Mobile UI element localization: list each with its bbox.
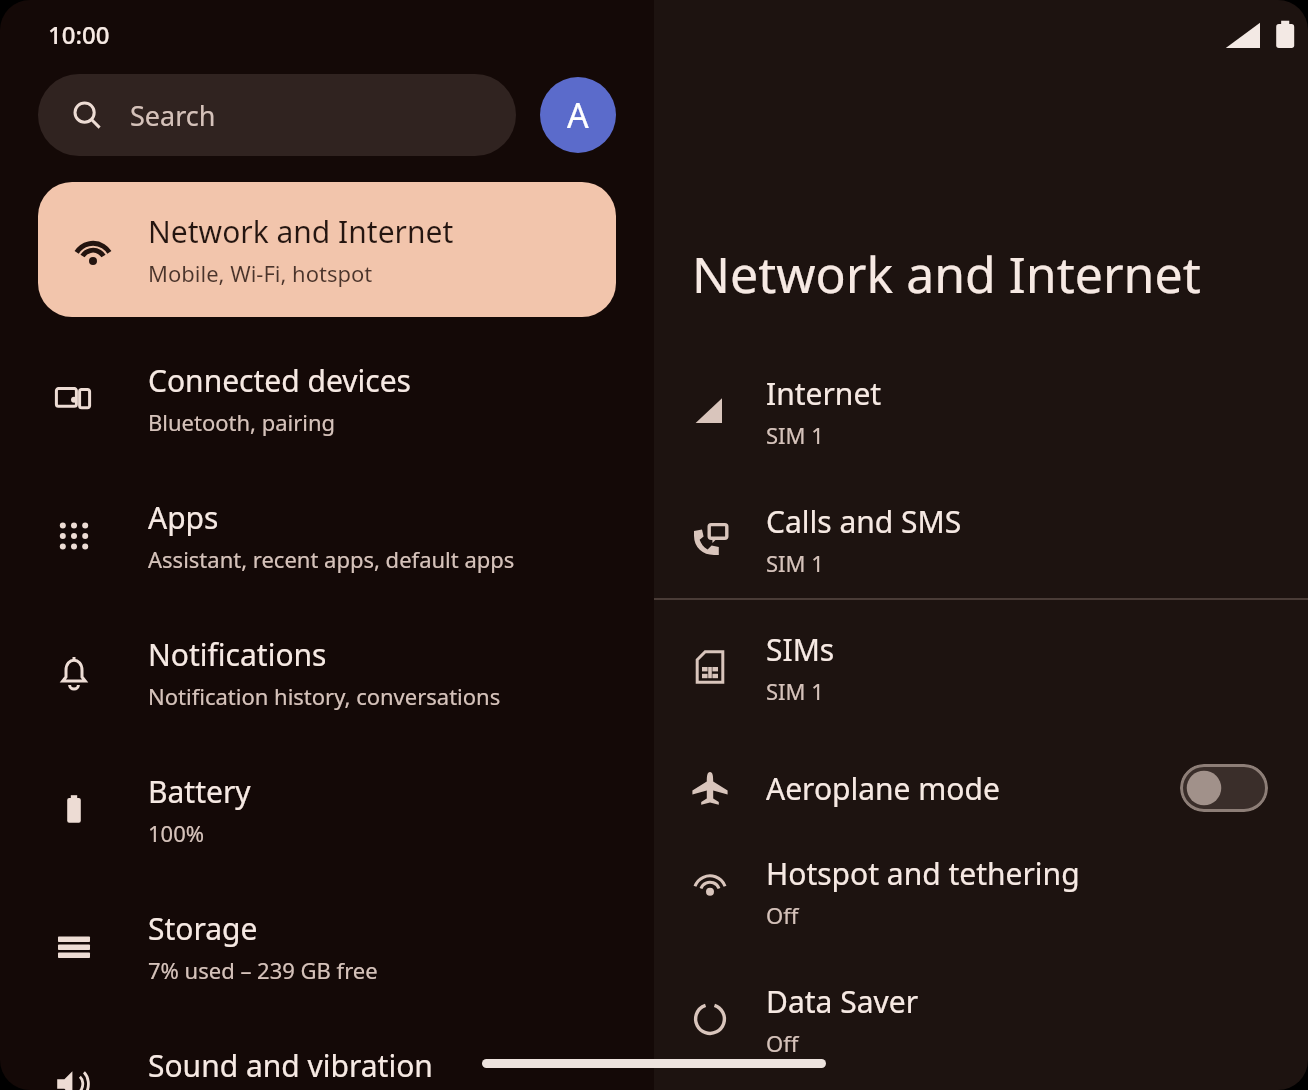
button[interactable]: Calls and SMS bbox=[654, 484, 1308, 594]
staticText: Sound and vibration bbox=[148, 1045, 433, 1086]
button[interactable]: Sound and vibration bbox=[0, 1015, 654, 1090]
button[interactable]: Apps bbox=[0, 467, 654, 604]
button[interactable]: Aeroplane mode toggle bbox=[1180, 764, 1268, 812]
button[interactable]: Aeroplane mode bbox=[654, 740, 1308, 836]
staticText: Off bbox=[766, 1028, 799, 1058]
staticText: Notification history, conversations bbox=[148, 681, 501, 711]
staticText: SIMs bbox=[766, 629, 835, 670]
staticText: Search bbox=[130, 97, 216, 134]
button[interactable]: Hotspot and tethering bbox=[654, 836, 1308, 946]
button[interactable]: Connected devices bbox=[0, 330, 654, 467]
staticText: Network and Internet bbox=[692, 240, 1201, 308]
staticText: Aeroplane mode bbox=[766, 768, 1000, 809]
staticText: Mobile, Wi-Fi, hotspot bbox=[148, 258, 373, 288]
button[interactable]: Storage bbox=[0, 878, 654, 1015]
staticText: SIM 1 bbox=[766, 676, 824, 706]
button[interactable]: SIMs bbox=[654, 612, 1308, 722]
staticText: Data Saver bbox=[766, 981, 919, 1022]
staticText: Internet bbox=[766, 373, 882, 414]
staticText: 100% bbox=[148, 818, 205, 848]
button[interactable]: Search bbox=[38, 74, 516, 156]
staticText: Off bbox=[766, 900, 799, 930]
staticText: Network and Internet bbox=[148, 211, 454, 252]
staticText: SIM 1 bbox=[766, 420, 824, 450]
staticText: Notifications bbox=[148, 634, 327, 675]
staticText: Connected devices bbox=[148, 360, 411, 401]
button[interactable]: Account bbox=[540, 77, 616, 153]
staticText: SIM 1 bbox=[766, 548, 824, 578]
button[interactable]: Notifications bbox=[0, 604, 654, 741]
staticText: Battery bbox=[148, 771, 251, 812]
staticText: Bluetooth, pairing bbox=[148, 407, 336, 437]
staticText: Calls and SMS bbox=[766, 501, 962, 542]
staticText: 7% used – 239 GB free bbox=[148, 955, 378, 985]
button[interactable]: Internet bbox=[654, 356, 1308, 466]
staticText: Assistant, recent apps, default apps bbox=[148, 544, 515, 574]
staticText: Apps bbox=[148, 497, 219, 538]
staticText: Storage bbox=[148, 908, 258, 949]
staticText: 10:00 bbox=[48, 18, 110, 51]
button[interactable]: Network and Internet bbox=[38, 182, 616, 317]
button[interactable]: Battery bbox=[0, 741, 654, 878]
staticText: A bbox=[567, 92, 589, 138]
button[interactable]: Data Saver bbox=[654, 964, 1308, 1074]
staticText: Hotspot and tethering bbox=[766, 853, 1080, 894]
